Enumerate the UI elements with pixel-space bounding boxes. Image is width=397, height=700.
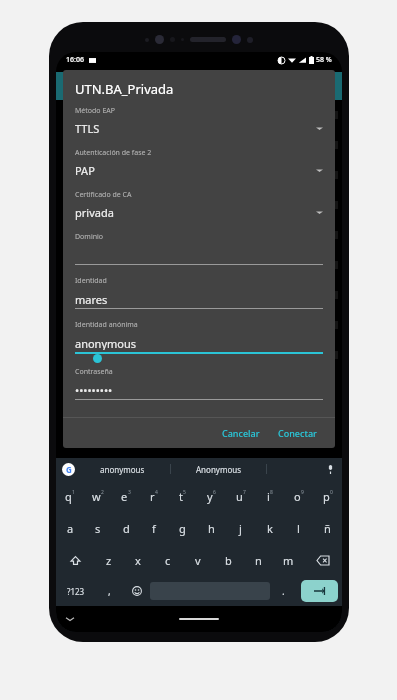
button[interactable]: ,: [96, 576, 123, 606]
staticText: UTN.BA_Privada: [75, 80, 174, 98]
staticText: t: [179, 489, 183, 504]
staticText: Identidad anónima: [75, 320, 138, 330]
button[interactable]: .: [270, 576, 297, 606]
button[interactable]: x: [123, 544, 153, 576]
staticText: Autenticación de fase 2: [75, 148, 152, 158]
staticText: 4: [155, 489, 158, 496]
staticText: ?123: [67, 586, 85, 597]
staticText: anonymous: [75, 336, 137, 350]
button[interactable]: Dominio: [63, 232, 335, 276]
button[interactable]: anonymous: [75, 458, 170, 480]
staticText: 1: [72, 489, 75, 496]
staticText: o: [294, 489, 301, 504]
button[interactable]: Google: [62, 463, 75, 476]
staticText: f: [152, 521, 156, 536]
staticText: Contraseña: [75, 367, 113, 377]
button[interactable]: w: [84, 480, 112, 512]
staticText: PAP: [75, 163, 95, 178]
button[interactable]: q: [56, 480, 84, 512]
button[interactable]: i: [255, 480, 284, 512]
button[interactable]: ?123: [56, 576, 96, 606]
staticText: x: [135, 553, 141, 568]
button[interactable]: t: [168, 480, 197, 512]
staticText: g: [179, 521, 186, 536]
staticText: l: [297, 521, 300, 536]
button[interactable]: k: [255, 512, 284, 544]
button[interactable]: Mayúsculas: [56, 544, 94, 576]
staticText: n: [255, 553, 262, 568]
button[interactable]: Contraseña: [63, 367, 335, 411]
button[interactable]: n: [243, 544, 273, 576]
button[interactable]: z: [94, 544, 123, 576]
staticText: z: [106, 553, 112, 568]
staticText: k: [267, 521, 273, 536]
staticText: u: [236, 489, 243, 504]
button[interactable]: j: [226, 512, 255, 544]
staticText: 58 %: [316, 55, 332, 65]
staticText: 7: [243, 489, 246, 496]
staticText: Conectar: [278, 427, 317, 439]
staticText: 2: [101, 489, 104, 496]
button[interactable]: Conectar: [272, 423, 323, 443]
button[interactable]: Intro: [301, 580, 338, 602]
button[interactable]: a: [56, 512, 84, 544]
button[interactable]: l: [284, 512, 313, 544]
button[interactable]: Cancelar: [216, 423, 266, 443]
staticText: b: [225, 553, 232, 568]
button[interactable]: Anonymous: [171, 458, 266, 480]
button[interactable]: e: [112, 480, 140, 512]
button[interactable]: Voz: [324, 463, 336, 475]
button[interactable]: Ocultar teclado: [64, 613, 76, 625]
staticText: i: [267, 489, 270, 504]
staticText: Certificado de CA: [75, 190, 132, 200]
staticText: h: [208, 521, 215, 536]
staticText: v: [195, 553, 201, 568]
staticText: 0: [330, 489, 333, 496]
staticText: a: [67, 521, 74, 536]
staticText: Anonymous: [196, 464, 242, 475]
staticText: w: [92, 489, 101, 504]
staticText: .: [282, 584, 285, 598]
button[interactable]: g: [168, 512, 197, 544]
staticText: 5: [183, 489, 186, 496]
staticText: r: [150, 489, 155, 504]
staticText: mares: [75, 292, 108, 306]
staticText: s: [95, 521, 101, 536]
button[interactable]: y: [197, 480, 226, 512]
button[interactable]: b: [213, 544, 243, 576]
button[interactable]: Certificado de CA: [63, 190, 335, 232]
staticText: c: [165, 553, 171, 568]
button[interactable]: f: [140, 512, 168, 544]
button[interactable]: p: [313, 480, 342, 512]
button[interactable]: d: [112, 512, 140, 544]
button[interactable]: Autenticación de fase 2: [63, 148, 335, 190]
button[interactable]: v: [183, 544, 213, 576]
staticText: anonymous: [100, 464, 145, 475]
staticText: m: [283, 553, 294, 568]
button[interactable]: s: [84, 512, 112, 544]
button[interactable]: ñ: [313, 512, 342, 544]
staticText: q: [65, 489, 72, 504]
button[interactable]: u: [226, 480, 255, 512]
button[interactable]: Identidad anónima: [63, 320, 335, 367]
button[interactable]: r: [140, 480, 168, 512]
staticText: j: [239, 521, 242, 536]
staticText: y: [207, 489, 213, 504]
button[interactable]: m: [273, 544, 303, 576]
button[interactable]: Emoji: [123, 576, 150, 606]
staticText: 6: [213, 489, 216, 496]
button[interactable]: h: [197, 512, 226, 544]
staticText: ,: [108, 584, 111, 598]
staticText: G: [66, 464, 72, 475]
button[interactable]: Identidad: [63, 276, 335, 320]
button[interactable]: Borrar: [303, 544, 342, 576]
button[interactable]: Método EAP: [63, 106, 335, 148]
button[interactable]: c: [153, 544, 183, 576]
staticText: Identidad: [75, 276, 107, 286]
staticText: p: [323, 489, 330, 504]
staticText: TTLS: [75, 121, 100, 136]
staticText: 16:06: [66, 55, 84, 65]
staticText: Método EAP: [75, 106, 116, 116]
button[interactable]: o: [284, 480, 313, 512]
